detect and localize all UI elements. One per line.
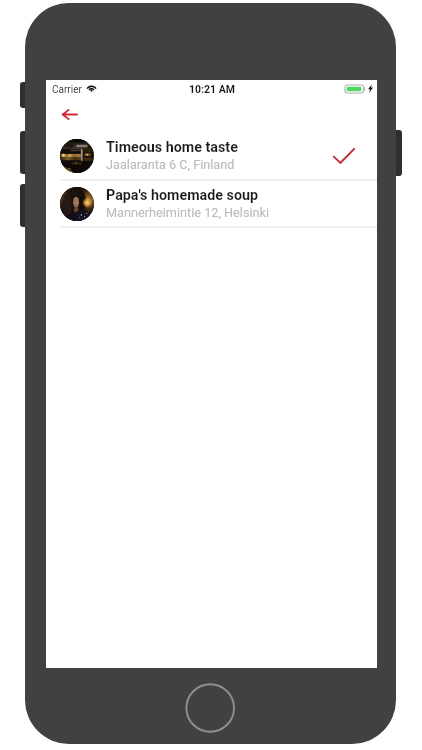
button[interactable]: Selected: [329, 141, 359, 171]
staticText: Jaalaranta 6 C, Finland: [106, 157, 235, 172]
staticText: 10:21 AM: [189, 83, 235, 95]
staticText: Papa's homemade soup: [106, 187, 259, 204]
staticText: Carrier: [52, 84, 82, 96]
button[interactable]: Back: [49, 94, 89, 134]
staticText: Timeous home taste: [106, 139, 238, 156]
button[interactable]: Papa's homemade soup: [46, 180, 377, 227]
button[interactable]: Timeous home taste: [46, 132, 377, 179]
staticText: Mannerheimintie 12, Helsinki: [106, 205, 270, 220]
